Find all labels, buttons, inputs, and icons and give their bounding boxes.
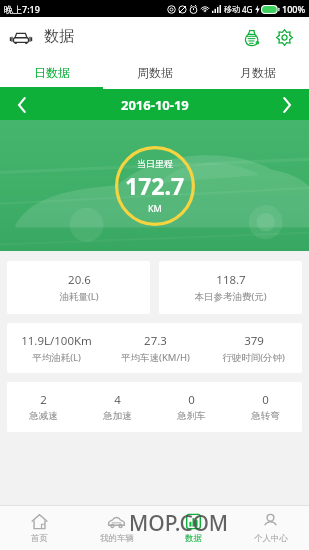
staticText: 油耗量(L) [59,290,99,303]
staticText: 118.7 [216,272,246,288]
staticText: 172.7 [125,170,185,201]
staticText: 平均车速(KM/H) [121,351,190,364]
staticText: 2 [40,392,47,408]
button[interactable]: 首页 [0,506,78,550]
staticText: 平均油耗(L) [32,351,81,364]
button[interactable]: 车辆 [7,23,35,51]
staticText: 4G [242,4,253,15]
staticText: 2016-10-19 [121,96,189,114]
button[interactable]: 设置 [268,21,300,53]
staticText: 20.6 [68,272,91,288]
button[interactable]: 2 [7,382,302,432]
button[interactable]: 上一天 [0,89,44,120]
staticText: 急刹车 [177,410,206,422]
staticText: 数据 [44,27,74,46]
staticText: 晚上7:19 [4,3,40,15]
staticText: KM [148,202,162,214]
button[interactable]: 周数据 [103,56,206,89]
staticText: 379 [244,333,264,349]
button[interactable]: 我的车辆 [78,506,155,550]
staticText: 0 [262,392,269,408]
staticText: MOP.COM [129,509,229,538]
button[interactable]: 11.9L/100Km [7,323,302,373]
staticText: 日数据 [34,65,70,80]
button[interactable]: 个人中心 [232,506,309,550]
button[interactable]: 118.7 [159,261,302,314]
button[interactable]: 加油 [236,21,268,53]
staticText: 100% [282,3,306,15]
staticText: 急加速 [103,410,132,422]
staticText: 11.9L/100Km [21,333,92,349]
staticText: 个人中心 [254,533,288,544]
button[interactable]: 日数据 [0,56,103,89]
staticText: 27.3 [144,333,167,349]
staticText: 4 [114,392,121,408]
staticText: 行驶时间(分钟) [222,351,285,364]
staticText: 移动 [224,4,240,14]
staticText: 周数据 [137,65,173,80]
staticText: 急减速 [29,410,58,422]
staticText: 急转弯 [251,410,280,422]
staticText: 当日里程 [137,158,173,169]
staticText: 本日参考油费(元) [194,290,267,303]
button[interactable]: 下一天 [265,89,309,120]
button[interactable]: 20.6 [7,261,150,314]
button[interactable]: 月数据 [206,56,309,89]
staticText: 我的车辆 [100,533,134,544]
staticText: 0 [188,392,195,408]
staticText: 月数据 [240,65,276,80]
staticText: 首页 [31,533,48,544]
button[interactable]: 数据 [155,506,232,550]
staticText: 数据 [185,533,202,544]
